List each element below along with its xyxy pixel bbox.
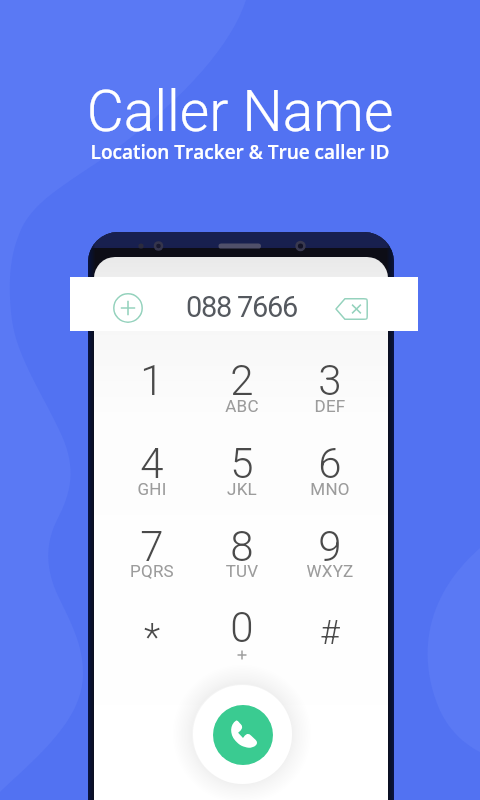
staticText: 6 — [286, 439, 374, 488]
button[interactable]: 4 — [108, 436, 196, 520]
button[interactable]: 9 — [286, 519, 374, 603]
staticText: Location Tracker & True caller ID — [0, 139, 480, 165]
button[interactable]: 6 — [286, 436, 374, 520]
button[interactable]: Call — [193, 685, 292, 784]
staticText: 0 — [198, 603, 286, 652]
staticText: DEF — [286, 396, 374, 416]
staticText: MNO — [286, 479, 374, 499]
button[interactable]: Backspace — [329, 291, 374, 327]
staticText: 7 — [108, 522, 196, 571]
staticText: 9 — [286, 522, 374, 571]
button[interactable]: * — [108, 600, 196, 660]
button[interactable]: 1 — [108, 353, 196, 437]
button[interactable]: Add contact — [107, 287, 149, 329]
button[interactable]: 5 — [198, 436, 286, 520]
staticText: WXYZ — [286, 561, 374, 581]
button[interactable]: 7 — [108, 519, 196, 603]
button[interactable]: 8 — [198, 519, 286, 603]
button[interactable]: 3 — [286, 353, 374, 437]
button[interactable]: # — [286, 600, 374, 660]
staticText: ABC — [198, 396, 286, 416]
staticText: 1 — [108, 356, 196, 405]
staticText: 4 — [108, 439, 196, 488]
staticText: JKL — [198, 479, 286, 499]
staticText: 088 7666 — [186, 290, 297, 324]
button[interactable]: 0 — [198, 600, 286, 660]
staticText: 5 — [198, 439, 286, 488]
staticText: 8 — [198, 522, 286, 571]
staticText: GHI — [108, 479, 196, 499]
staticText: Caller Name — [0, 78, 480, 145]
staticText: # — [286, 612, 374, 652]
button[interactable]: 2 — [198, 353, 286, 437]
staticText: TUV — [198, 561, 286, 581]
staticText: PQRS — [108, 561, 196, 581]
staticText: * — [108, 616, 196, 661]
staticText: 2 — [198, 356, 286, 405]
staticText: 3 — [286, 356, 374, 405]
